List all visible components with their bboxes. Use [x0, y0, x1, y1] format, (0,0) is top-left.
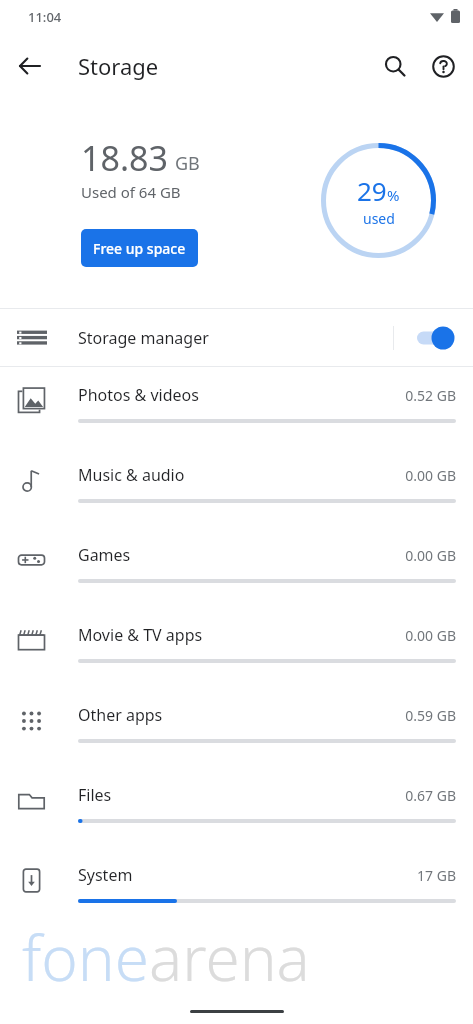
- staticText: Music & audio: [78, 464, 185, 486]
- button[interactable]: Movie & TV apps: [0, 611, 473, 691]
- button[interactable]: Games: [0, 531, 473, 611]
- staticText: Other apps: [78, 704, 163, 726]
- button[interactable]: Other apps: [0, 691, 473, 771]
- staticText: System: [78, 864, 133, 886]
- staticText: Files: [78, 784, 112, 806]
- staticText: GB: [175, 151, 200, 176]
- staticText: Photos & videos: [78, 384, 199, 406]
- button[interactable]: Help: [423, 46, 463, 86]
- button[interactable]: System: [0, 851, 473, 931]
- staticText: 0.59 GB: [300, 706, 456, 725]
- button[interactable]: Photos & videos: [0, 371, 473, 451]
- staticText: 18.83: [81, 135, 168, 181]
- staticText: 0.00 GB: [300, 466, 456, 485]
- button[interactable]: Back: [10, 46, 50, 86]
- staticText: 0.00 GB: [300, 626, 456, 645]
- staticText: Free up space: [93, 239, 186, 258]
- button[interactable]: Files: [0, 771, 473, 851]
- staticText: Games: [78, 544, 131, 566]
- staticText: Movie & TV apps: [78, 624, 203, 646]
- staticText: arena: [149, 915, 310, 999]
- staticText: 11:04: [28, 8, 62, 26]
- staticText: Used of 64 GB: [81, 182, 181, 202]
- staticText: %: [387, 185, 400, 205]
- button[interactable]: Free up space: [81, 229, 198, 267]
- staticText: 0.52 GB: [300, 386, 456, 405]
- staticText: Storage: [78, 51, 159, 81]
- button[interactable]: Search: [375, 46, 415, 86]
- button[interactable]: Storage manager: [0, 309, 473, 366]
- staticText: Storage manager: [78, 327, 209, 349]
- staticText: 17 GB: [300, 866, 456, 885]
- button[interactable]: Storage manager toggle: [409, 326, 461, 350]
- staticText: fone: [22, 915, 149, 999]
- staticText: 0.00 GB: [300, 546, 456, 565]
- staticText: 0.67 GB: [300, 786, 456, 805]
- staticText: 29: [357, 173, 387, 208]
- staticText: used: [363, 209, 395, 228]
- button[interactable]: Music & audio: [0, 451, 473, 531]
